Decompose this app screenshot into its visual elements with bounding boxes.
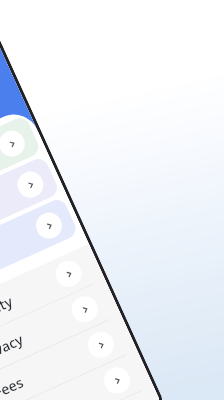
button[interactable]: Privacy bbox=[0, 279, 121, 394]
button[interactable]: Open bbox=[0, 126, 29, 161]
button[interactable]: Appearance bbox=[0, 196, 79, 308]
button[interactable]: Fees bbox=[0, 315, 137, 400]
button[interactable]: Open bbox=[51, 256, 86, 291]
staticText: Security bbox=[0, 292, 15, 331]
button[interactable]: Open bbox=[13, 167, 48, 202]
button[interactable]: Open bbox=[32, 208, 66, 243]
button[interactable]: Open bbox=[67, 292, 102, 326]
button[interactable]: Notifications bbox=[0, 156, 60, 267]
button[interactable]: Account bbox=[0, 115, 42, 226]
button[interactable]: Open bbox=[100, 363, 134, 397]
button[interactable]: Security bbox=[0, 244, 105, 358]
button[interactable]: Support bbox=[0, 350, 153, 400]
staticText: Fees bbox=[0, 372, 27, 400]
button[interactable]: Open bbox=[84, 328, 118, 362]
staticText: Privacy bbox=[0, 330, 26, 367]
